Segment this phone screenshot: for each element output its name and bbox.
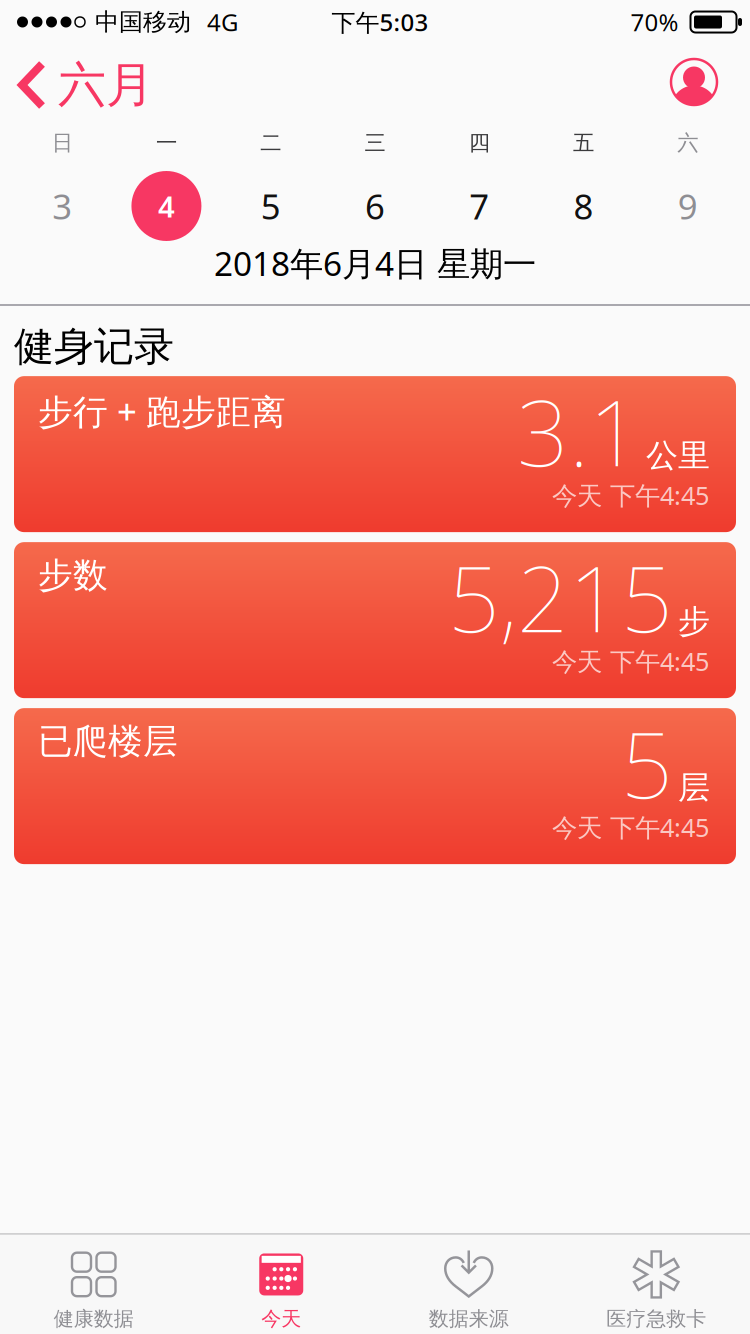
staticText: 六 — [677, 130, 698, 156]
staticText: 3 — [52, 183, 72, 229]
staticText: 7 — [469, 183, 489, 229]
staticText: 公里 — [646, 436, 710, 475]
staticText: 4 — [158, 186, 175, 225]
button[interactable]: 六月 — [0, 52, 154, 111]
staticText: 8 — [574, 183, 594, 229]
staticText: 医疗急救卡 — [606, 1306, 706, 1331]
staticText: 今天 下午4:45 — [552, 478, 709, 512]
staticText: 步行 + 跑步距离 — [38, 388, 286, 434]
staticText: 中国移动 — [95, 7, 191, 37]
button[interactable]: 5 — [219, 171, 323, 241]
staticText: 健康数据 — [54, 1306, 134, 1331]
button[interactable]: 已爬楼层 — [14, 708, 736, 864]
staticText: 3.1 — [517, 371, 641, 491]
staticText: 下午5:03 — [331, 6, 428, 38]
staticText: 今天 — [261, 1306, 301, 1331]
button[interactable]: 9 — [636, 171, 740, 241]
button[interactable]: 步行 + 跑步距离 — [14, 376, 736, 532]
button[interactable]: 健康资料 — [671, 59, 750, 105]
staticText: 今天 下午4:45 — [552, 810, 709, 844]
staticText: 四 — [469, 130, 490, 156]
button[interactable]: 6 — [323, 171, 427, 241]
staticText: 2018年6月4日 星期一 — [214, 241, 536, 285]
staticText: 5 — [261, 183, 281, 229]
button[interactable]: 今天 — [187, 1249, 375, 1331]
button[interactable]: 医疗急救卡 — [562, 1249, 750, 1331]
staticText: 数据来源 — [429, 1306, 509, 1331]
staticText: 五 — [573, 130, 594, 156]
staticText: 健身记录 — [14, 322, 174, 371]
staticText: 六月 — [58, 55, 154, 114]
button[interactable]: 3 — [10, 171, 114, 241]
staticText: 9 — [678, 183, 698, 229]
button[interactable]: 步数 — [14, 542, 736, 698]
staticText: 日 — [52, 130, 73, 156]
button[interactable]: 8 — [531, 171, 636, 241]
staticText: 5,215 — [448, 537, 673, 657]
staticText: 步数 — [38, 554, 108, 597]
button[interactable]: 7 — [427, 171, 531, 241]
button[interactable]: 4 — [114, 171, 219, 241]
staticText: 步 — [678, 602, 710, 641]
staticText: 一 — [156, 130, 177, 156]
staticText: 三 — [364, 130, 385, 156]
staticText: 4G — [207, 6, 238, 38]
staticText: 5 — [621, 703, 673, 823]
staticText: 二 — [260, 130, 281, 156]
staticText: 层 — [678, 768, 710, 807]
staticText: 70% — [630, 6, 678, 38]
button[interactable]: 健康数据 — [0, 1249, 187, 1331]
staticText: 6 — [365, 183, 385, 229]
staticText: 已爬楼层 — [38, 720, 178, 763]
staticText: 今天 下午4:45 — [552, 644, 709, 678]
button[interactable]: 数据来源 — [375, 1249, 562, 1331]
